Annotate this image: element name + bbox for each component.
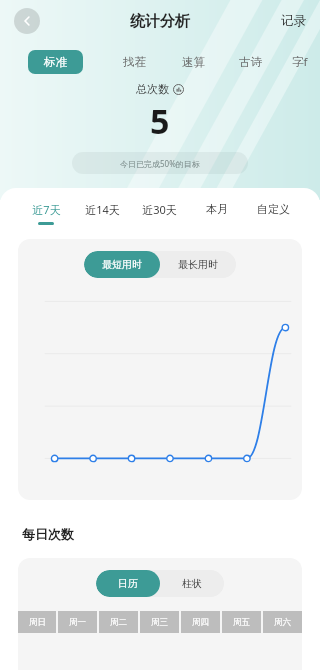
staticText: 速算 xyxy=(182,55,205,69)
staticText: 周一 xyxy=(69,617,86,628)
button[interactable]: 速算 xyxy=(182,50,205,74)
button[interactable]: 近30天 xyxy=(131,202,188,222)
staticText: 周三 xyxy=(151,617,168,628)
staticText: 周二 xyxy=(110,617,127,628)
staticText: 本月 xyxy=(206,202,228,216)
staticText: 统计分析 xyxy=(130,12,190,31)
staticText: 最短用时 xyxy=(102,258,142,271)
button[interactable]: 自定义 xyxy=(245,202,302,221)
button[interactable]: 记录 xyxy=(281,13,306,29)
button[interactable]: 近14天 xyxy=(74,202,131,222)
staticText: 周六 xyxy=(274,617,291,628)
button[interactable]: 最短用时 xyxy=(84,251,160,278)
staticText: 字f xyxy=(292,54,308,70)
staticText: 找茬 xyxy=(123,55,146,69)
staticText: 记录 xyxy=(281,13,306,29)
button[interactable]: 标准 xyxy=(28,50,83,74)
button[interactable]: 字f xyxy=(292,49,308,75)
staticText: 自定义 xyxy=(257,202,290,216)
button[interactable]: 柱状 xyxy=(160,570,224,597)
staticText: 5 xyxy=(150,98,170,144)
staticText: 今日已完成50%的目标 xyxy=(120,158,200,169)
staticText: 周五 xyxy=(233,617,250,628)
staticText: 近30天 xyxy=(142,202,177,217)
button[interactable]: 古诗 xyxy=(239,50,262,74)
button[interactable]: Back xyxy=(14,8,40,34)
staticText: 古诗 xyxy=(239,55,262,69)
staticText: 近7天 xyxy=(32,202,61,217)
staticText: 近14天 xyxy=(85,202,120,217)
button[interactable]: 近7天 xyxy=(18,202,74,225)
button[interactable]: 日历 xyxy=(96,570,160,597)
button[interactable]: 找茬 xyxy=(123,50,146,74)
button[interactable]: 今日已完成50%的目标 xyxy=(72,152,248,174)
staticText: 总次数 xyxy=(136,82,169,96)
staticText: 日历 xyxy=(118,577,138,590)
button[interactable]: 最长用时 xyxy=(160,251,236,278)
staticText: 柱状 xyxy=(182,577,202,590)
staticText: 每日次数 xyxy=(22,526,74,542)
staticText: 周四 xyxy=(192,617,209,628)
staticText: 周日 xyxy=(29,617,46,628)
staticText: 标准 xyxy=(44,55,67,69)
button[interactable]: 本月 xyxy=(188,202,245,221)
staticText: 最长用时 xyxy=(178,258,218,271)
